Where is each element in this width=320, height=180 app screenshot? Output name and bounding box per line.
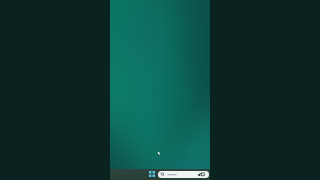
button[interactable]: Search	[158, 171, 209, 178]
button[interactable]: Start	[149, 171, 155, 177]
